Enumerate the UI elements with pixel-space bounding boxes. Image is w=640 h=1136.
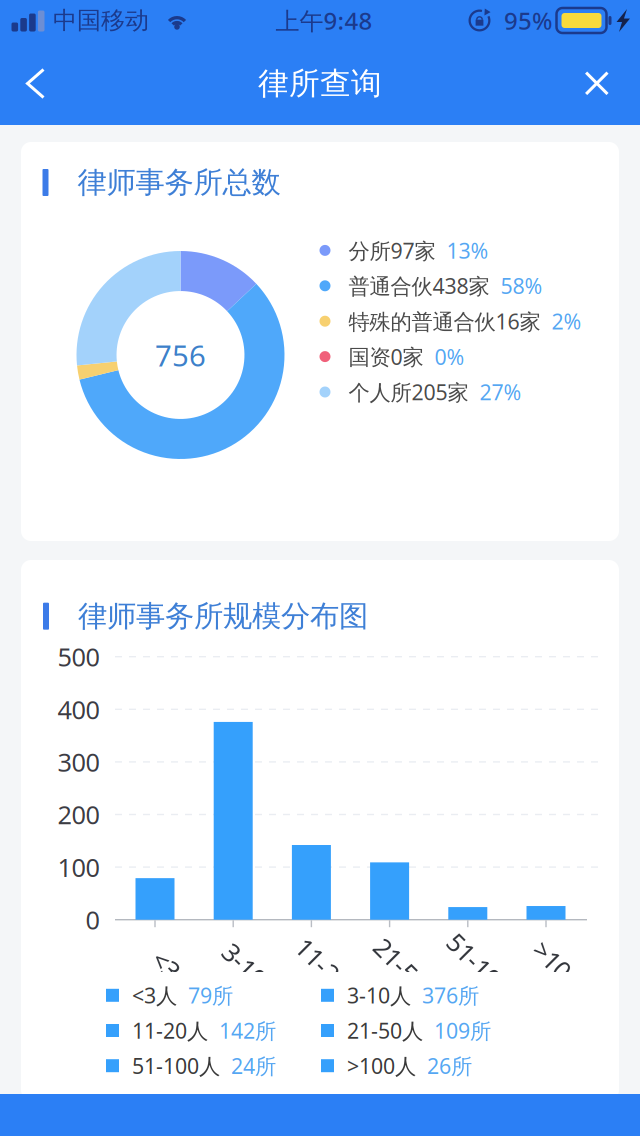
- staticText: 500: [57, 640, 99, 673]
- staticText: 普通合伙438家: [348, 272, 489, 300]
- staticText: <3人: [148, 957, 201, 990]
- staticText: 142所: [219, 1016, 276, 1045]
- staticText: 3-10人: [347, 981, 411, 1009]
- staticText: 上午9:48: [275, 5, 372, 36]
- staticText: 11-20人: [287, 957, 376, 990]
- staticText: 0%: [434, 342, 464, 371]
- staticText: 国资0家: [348, 342, 423, 371]
- staticText: 特殊的普通合伙16家: [348, 307, 540, 335]
- staticText: >100人: [347, 1051, 416, 1080]
- staticText: 律师事务所规模分布图: [78, 598, 368, 634]
- staticText: 13%: [446, 236, 488, 264]
- staticText: 24所: [231, 1051, 276, 1080]
- staticText: 51-100人: [132, 1051, 220, 1080]
- staticText: 756: [155, 335, 206, 374]
- staticText: 律所查询: [258, 65, 382, 102]
- staticText: 21-50人: [365, 957, 454, 990]
- button[interactable]: Back: [0, 44, 75, 122]
- staticText: 个人所205家: [348, 378, 468, 406]
- staticText: 0: [85, 903, 99, 936]
- staticText: 26所: [427, 1051, 472, 1080]
- staticText: 376所: [422, 981, 479, 1009]
- staticText: 100: [57, 850, 99, 884]
- button[interactable]: Close: [558, 45, 628, 122]
- staticText: 200: [57, 798, 99, 831]
- staticText: 400: [57, 692, 99, 726]
- staticText: 79所: [188, 981, 233, 1009]
- staticText: >100人: [525, 957, 606, 990]
- staticText: 11-20人: [132, 1016, 208, 1045]
- staticText: <3人: [132, 981, 177, 1009]
- staticText: 律师事务所总数: [77, 164, 280, 200]
- staticText: 3-10人: [216, 957, 291, 990]
- staticText: 27%: [479, 378, 521, 406]
- staticText: 中国移动: [53, 6, 149, 35]
- staticText: 分所97家: [348, 236, 435, 264]
- staticText: 58%: [500, 272, 542, 300]
- staticText: 51-100人: [436, 957, 539, 990]
- staticText: 21-50人: [347, 1016, 423, 1045]
- staticText: 95%: [504, 5, 552, 36]
- staticText: 109所: [434, 1016, 491, 1045]
- staticText: 300: [57, 745, 99, 779]
- staticText: 2%: [551, 307, 581, 335]
